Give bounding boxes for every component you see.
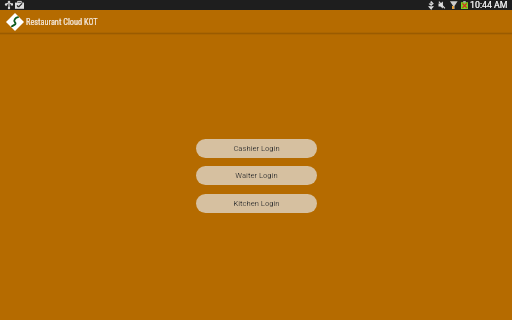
- button[interactable]: Kitchen Login: [196, 194, 317, 213]
- staticText: Waiter Login: [235, 171, 278, 180]
- button[interactable]: Cashier Login: [196, 139, 317, 158]
- button[interactable]: Restaurant Cloud KOT home: [6, 13, 24, 31]
- staticText: Restaurant Cloud KOT: [26, 17, 98, 27]
- staticText: 10:44 AM: [470, 0, 508, 10]
- staticText: Cashier Login: [233, 144, 280, 153]
- button[interactable]: Waiter Login: [196, 166, 317, 185]
- staticText: Kitchen Login: [233, 199, 280, 208]
